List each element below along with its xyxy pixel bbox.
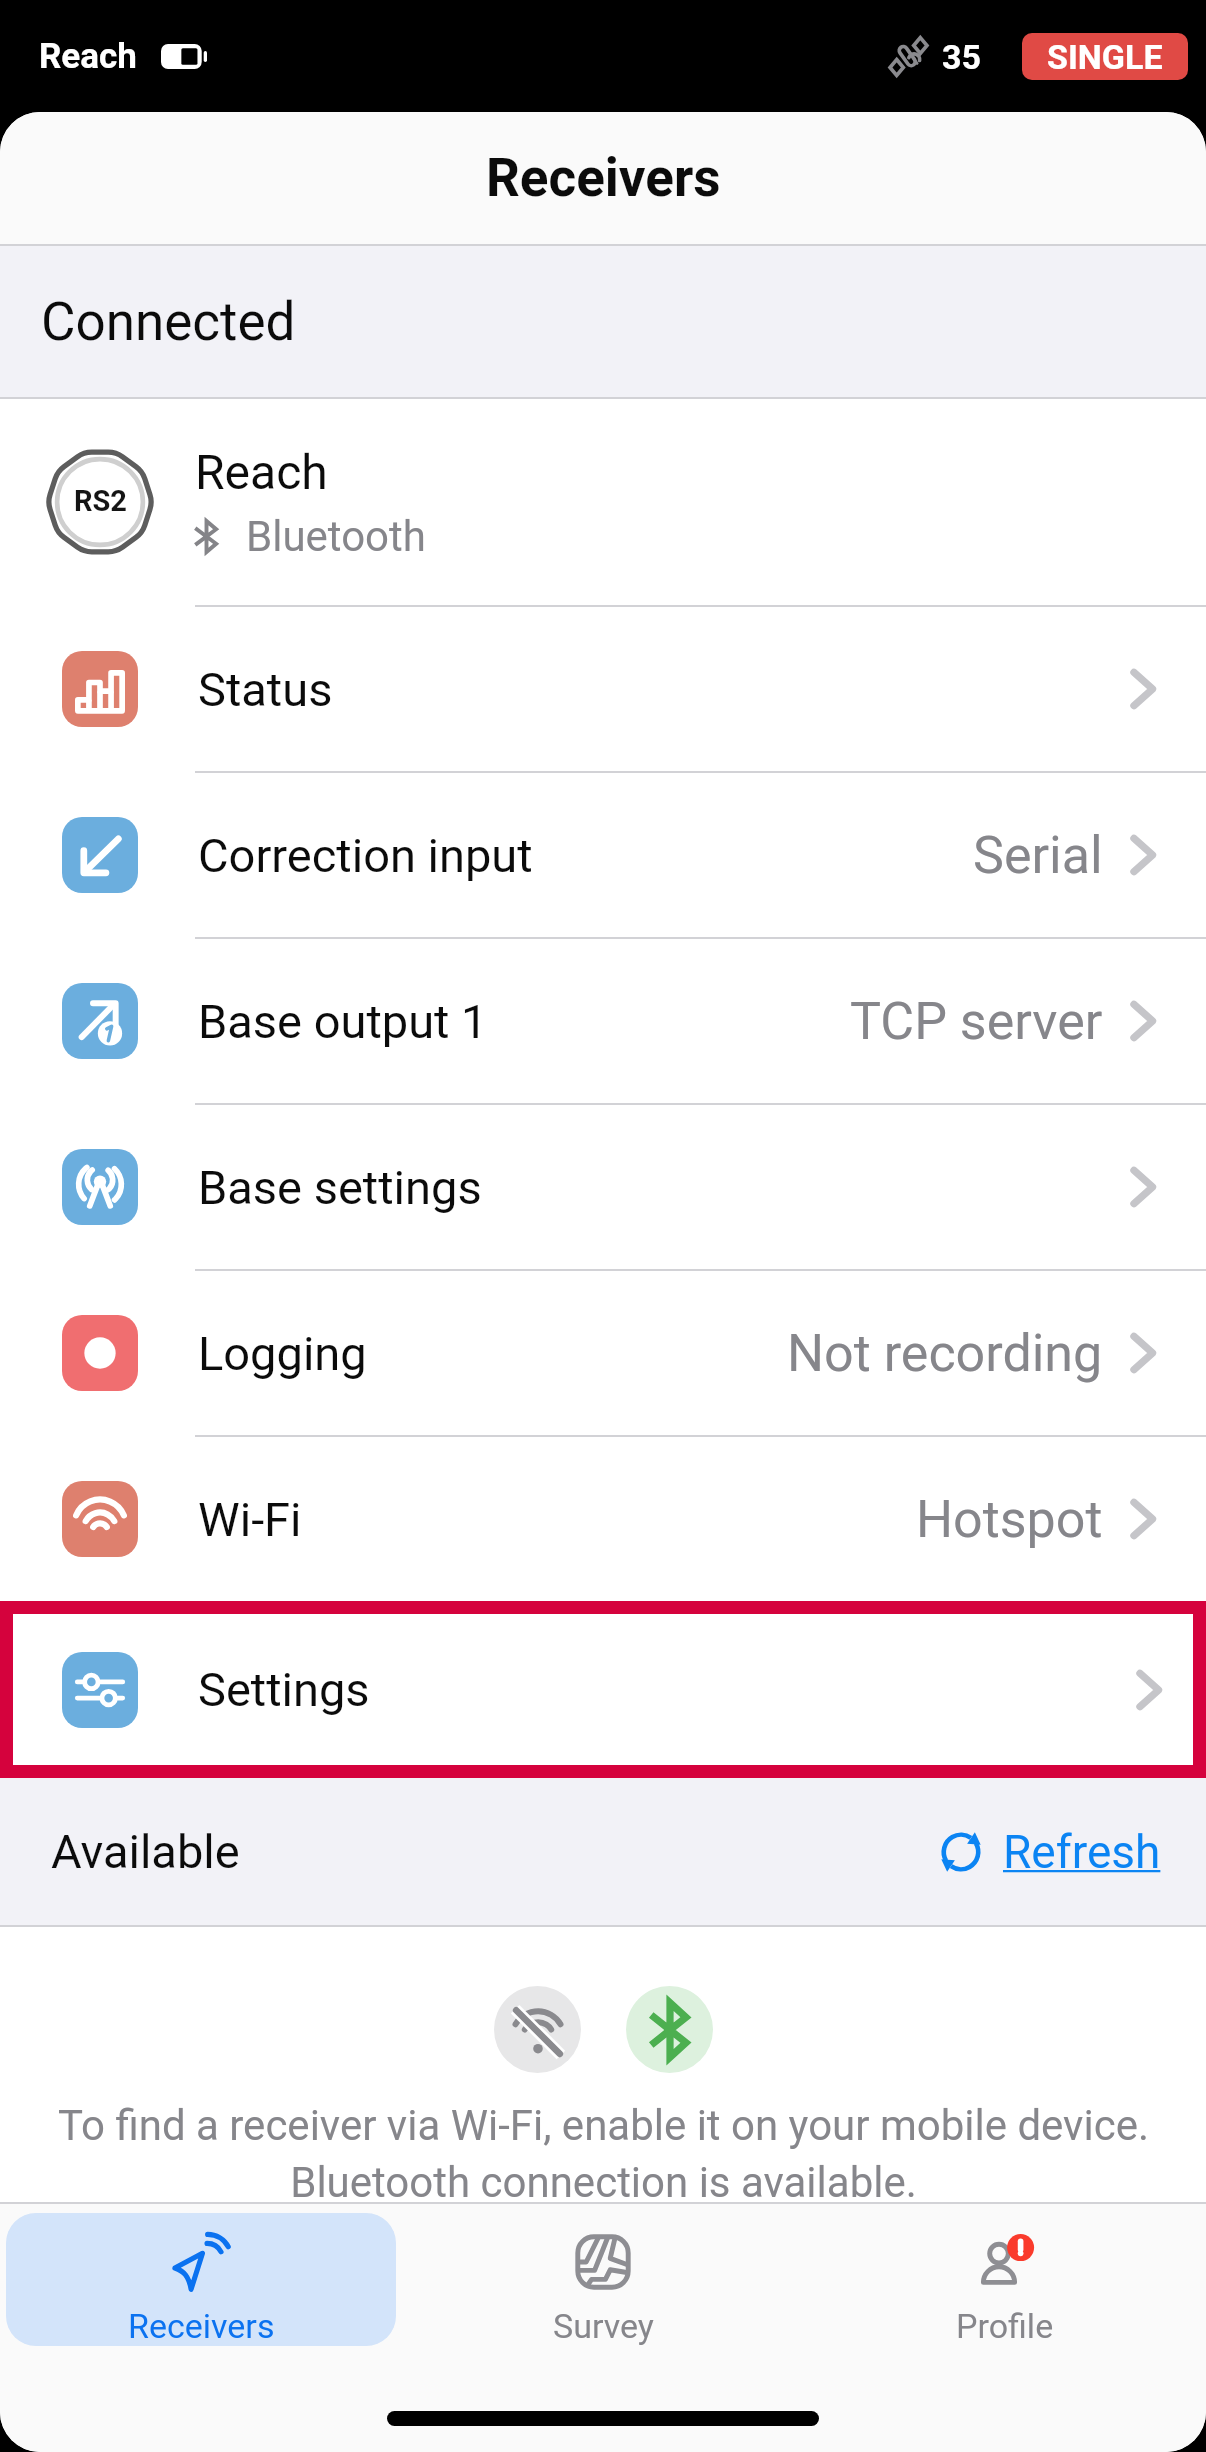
staticText: Refresh: [1003, 1825, 1161, 1879]
button[interactable]: Correction input: [0, 773, 1206, 937]
button[interactable]: Base output 1: [0, 939, 1206, 1103]
button[interactable]: Logging: [0, 1271, 1206, 1435]
staticText: Settings: [198, 1662, 370, 1717]
staticText: Reach: [39, 36, 137, 77]
staticText: Base settings: [198, 1160, 482, 1215]
staticText: 35: [942, 37, 982, 77]
staticText: Hotspot: [916, 1489, 1103, 1550]
staticText: Receivers: [486, 147, 721, 209]
staticText: Survey: [553, 2306, 654, 2346]
staticText: Receivers: [128, 2306, 275, 2346]
staticText: To find a receiver via Wi-Fi, enable it …: [58, 2101, 1149, 2202]
staticText: SINGLE: [1047, 37, 1163, 77]
staticText: TCP server: [850, 991, 1103, 1052]
button[interactable]: Refresh: [938, 1825, 1161, 1879]
staticText: Logging: [198, 1326, 367, 1381]
staticText: Status: [198, 662, 333, 717]
staticText: Wi-Fi: [198, 1492, 302, 1547]
staticText: Bluetooth: [246, 512, 426, 561]
other: Survey: [573, 2232, 633, 2292]
button[interactable]: Receivers: [6, 2213, 396, 2346]
button[interactable]: Wi-Fi: [0, 1437, 1206, 1601]
staticText: Not recording: [787, 1323, 1103, 1384]
button[interactable]: Status: [0, 607, 1206, 771]
other: Receivers: [171, 2232, 231, 2292]
staticText: Profile: [956, 2306, 1054, 2346]
staticText: Reach: [195, 444, 328, 500]
staticText: Serial: [973, 825, 1103, 886]
other: Profile: [975, 2232, 1035, 2292]
button[interactable]: Settings: [13, 1614, 1193, 1765]
staticText: Available: [51, 1824, 240, 1879]
staticText: Correction input: [198, 828, 533, 883]
button[interactable]: Profile: [810, 2213, 1200, 2346]
staticText: RS2: [74, 484, 127, 518]
staticText: Connected: [41, 291, 296, 353]
staticText: Base output 1: [198, 994, 488, 1049]
button[interactable]: Base settings: [0, 1105, 1206, 1269]
button[interactable]: Survey: [408, 2213, 798, 2346]
